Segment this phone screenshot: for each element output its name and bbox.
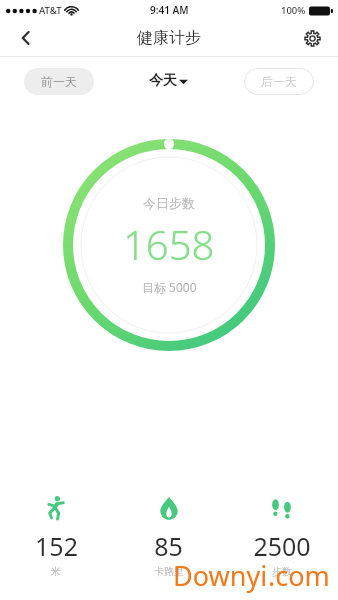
button[interactable]: Settings: [292, 20, 332, 56]
button[interactable]: Back: [6, 20, 46, 56]
staticText: 85: [154, 529, 183, 563]
staticText: 2500: [253, 529, 311, 563]
staticText: 健康计步: [137, 28, 201, 48]
staticText: 步数: [272, 565, 292, 578]
staticText: 前一天: [41, 74, 77, 89]
staticText: 今日步数: [143, 195, 195, 211]
staticText: 后一天: [261, 74, 297, 89]
button[interactable]: 后一天: [244, 68, 314, 95]
staticText: 米: [51, 565, 61, 578]
staticText: 100%: [281, 4, 306, 17]
staticText: Downyi: [173, 557, 268, 594]
staticText: 目标 5000: [142, 279, 197, 295]
staticText: 152: [35, 529, 78, 563]
button[interactable]: 152: [0, 491, 112, 582]
button[interactable]: 前一天: [24, 68, 94, 95]
staticText: 今天: [149, 72, 177, 90]
staticText: 卡路里: [154, 565, 184, 578]
staticText: 9:41 AM: [150, 3, 189, 17]
button[interactable]: 今天: [143, 67, 194, 95]
button[interactable]: 2500: [225, 491, 338, 582]
staticText: 1658: [123, 217, 215, 271]
button[interactable]: 85: [112, 491, 225, 582]
staticText: .com: [268, 557, 330, 594]
staticText: AT&T: [39, 4, 62, 17]
